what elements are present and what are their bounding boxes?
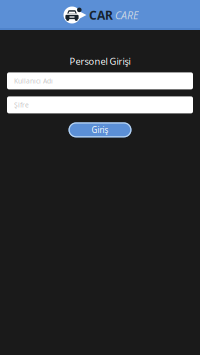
staticText: Giriş	[91, 125, 108, 135]
staticText: Personel Girişi	[69, 55, 130, 67]
button[interactable]: Kullanıcı Adı	[7, 72, 193, 89]
button[interactable]: Şifre	[7, 96, 193, 113]
staticText: Kullanıcı Adı	[14, 76, 53, 85]
staticText: CAR	[89, 7, 113, 23]
button[interactable]: Giriş	[68, 122, 131, 137]
staticText: CARE	[115, 8, 138, 22]
staticText: Şifre	[14, 100, 29, 109]
